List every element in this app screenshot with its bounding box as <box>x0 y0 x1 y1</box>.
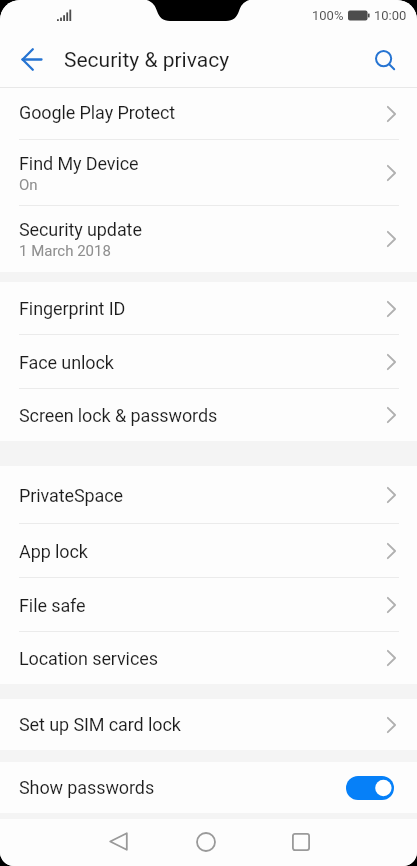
button[interactable]: File safe <box>0 578 417 632</box>
button[interactable] <box>22 49 42 70</box>
staticText: 1 March 2018 <box>19 242 111 260</box>
button[interactable]: Screen lock & passwords <box>0 389 417 441</box>
staticText: File safe <box>19 595 86 616</box>
staticText: On <box>19 176 38 194</box>
staticText: Google Play Protect <box>19 102 176 123</box>
staticText: Screen lock & passwords <box>19 405 218 426</box>
staticText: Location services <box>19 648 158 669</box>
button[interactable]: PrivateSpace <box>0 466 417 524</box>
staticText: 10:00 <box>374 8 407 23</box>
button[interactable]: Google Play Protect <box>0 88 417 140</box>
staticText: PrivateSpace <box>19 485 123 506</box>
staticText: Fingerprint ID <box>19 298 126 319</box>
staticText: Security update <box>19 219 142 240</box>
button[interactable]: Face unlock <box>0 335 417 389</box>
button[interactable] <box>292 833 310 851</box>
button[interactable]: Security update <box>0 206 417 272</box>
button[interactable]: Find My Device <box>0 140 417 206</box>
staticText: App lock <box>19 541 88 562</box>
staticText: Find My Device <box>19 153 139 174</box>
button[interactable]: Fingerprint ID <box>0 282 417 335</box>
button[interactable]: App lock <box>0 524 417 578</box>
staticText: Set up SIM card lock <box>19 714 181 735</box>
staticText: Face unlock <box>19 352 114 373</box>
staticText: Show passwords <box>19 777 155 798</box>
button[interactable]: Set up SIM card lock <box>0 699 417 750</box>
button[interactable]: Show passwords <box>0 762 417 813</box>
button[interactable]: Location services <box>0 632 417 684</box>
button[interactable] <box>196 832 216 852</box>
staticText: 100% <box>312 8 344 23</box>
staticText: Security & privacy <box>64 48 230 73</box>
button[interactable] <box>109 832 128 851</box>
button[interactable] <box>375 50 396 71</box>
